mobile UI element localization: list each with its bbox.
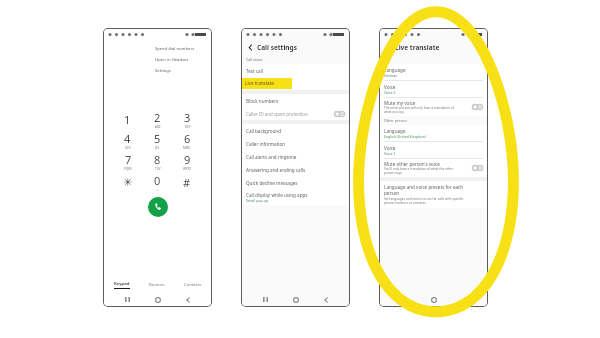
button[interactable]: Call alerts and ringtone <box>242 150 349 163</box>
staticText: Mute other person's voice <box>384 161 440 167</box>
button[interactable]: 4 <box>113 130 142 151</box>
button[interactable]: Voice <box>380 142 487 158</box>
staticText: Open in Headset <box>155 57 188 63</box>
staticText: Call display while using apps <box>246 192 308 198</box>
staticText: German <box>384 73 398 78</box>
button[interactable]: Caller information <box>242 137 349 150</box>
staticText: 1 <box>124 112 131 127</box>
button[interactable]: Call background <box>242 124 349 137</box>
staticText: Voice 2 <box>384 90 396 95</box>
button[interactable]: Recents <box>120 293 134 306</box>
staticText: Voice <box>384 145 396 151</box>
staticText: 9 <box>184 152 191 167</box>
staticText: Live translate <box>245 80 274 86</box>
button[interactable]: Recents <box>139 277 175 293</box>
staticText: Block numbers <box>246 98 279 104</box>
staticText: Voice 1 <box>384 151 396 156</box>
button[interactable]: Back <box>384 43 393 52</box>
staticText: 0 <box>154 173 161 188</box>
button[interactable]: Home <box>289 293 303 306</box>
button[interactable]: Open in Headset <box>150 54 211 65</box>
button[interactable]: Mute other person's voice <box>380 159 487 177</box>
staticText: Small pop-up <box>246 198 269 203</box>
button[interactable]: 0 <box>142 172 172 193</box>
staticText: Call settings <box>257 43 297 52</box>
button[interactable]: Call <box>148 197 168 217</box>
staticText: Set languages and voices to use for call… <box>384 197 464 201</box>
staticText: Quick decline messages <box>246 180 298 186</box>
staticText: 3 <box>184 110 191 125</box>
staticText: Caller information <box>246 141 286 147</box>
button[interactable]: 5 <box>142 130 172 151</box>
staticText: Call assist <box>246 57 263 62</box>
staticText: ✳ <box>123 176 133 189</box>
staticText: Other person <box>384 118 407 123</box>
staticText: Keypad <box>114 281 130 287</box>
button[interactable]: 1 <box>113 109 142 130</box>
staticText: 5 <box>154 131 161 146</box>
button[interactable]: Language and voice presets for each <box>380 181 487 208</box>
button[interactable]: Answering and ending calls <box>242 163 349 176</box>
staticText: Mute my voice <box>384 100 416 106</box>
button[interactable]: Back <box>457 293 471 306</box>
button[interactable]: 8 <box>142 151 172 172</box>
button[interactable]: 3 <box>172 109 202 130</box>
button[interactable]: Recents <box>396 293 410 306</box>
button[interactable]: 7 <box>113 151 142 172</box>
button[interactable]: Contacts <box>175 277 211 293</box>
staticText: Language and voice presets for each <box>384 184 464 190</box>
button[interactable]: 9 <box>172 151 202 172</box>
button[interactable]: Settings <box>150 65 211 76</box>
staticText: Recents <box>149 282 165 288</box>
button[interactable]: Language <box>380 125 487 141</box>
staticText: Answering and ending calls <box>246 167 306 173</box>
button[interactable]: Block numbers <box>242 94 349 107</box>
button[interactable]: Voice <box>380 81 487 97</box>
staticText: You'll only hear a translation of what t… <box>384 167 454 171</box>
staticText: Call background <box>246 128 282 134</box>
button[interactable]: Mute my voice <box>380 98 487 116</box>
staticText: The other person will only hear a transl… <box>384 106 455 110</box>
staticText: Me <box>384 57 390 62</box>
staticText: 6 <box>184 131 191 146</box>
staticText: WXYZ <box>183 167 191 171</box>
staticText: person <box>384 190 400 196</box>
button[interactable]: Language <box>380 64 487 80</box>
staticText: Call alerts and ringtone <box>246 154 297 160</box>
staticText: Speed dial numbers <box>155 46 195 52</box>
button[interactable]: Quick decline messages <box>242 176 349 189</box>
staticText: + <box>157 188 159 192</box>
staticText: # <box>183 175 191 190</box>
staticText: Voice <box>384 84 396 90</box>
staticText: 4 <box>124 131 131 146</box>
button[interactable]: Call display while using apps <box>242 189 349 205</box>
button[interactable]: Home <box>427 293 441 306</box>
button[interactable]: Back <box>319 293 333 306</box>
staticText: Settings <box>155 68 171 74</box>
staticText: Live translate <box>246 81 275 87</box>
button[interactable]: 2 <box>142 109 172 130</box>
button[interactable]: Speed dial numbers <box>150 43 211 54</box>
staticText: MNO <box>183 146 191 150</box>
button[interactable]: 6 <box>172 130 202 151</box>
button[interactable]: Home <box>151 293 165 306</box>
button[interactable]: Back <box>246 43 255 52</box>
staticText: what you say. <box>384 110 405 114</box>
staticText: Caller ID and spam protection <box>246 111 334 117</box>
button[interactable]: # <box>172 172 202 193</box>
button[interactable]: ✳ <box>113 172 142 193</box>
staticText: phone numbers or contacts. <box>384 201 427 205</box>
button[interactable]: Live translate <box>242 77 349 90</box>
staticText: GHI <box>125 146 131 150</box>
button[interactable]: Back <box>181 293 195 306</box>
button[interactable]: Keypad <box>104 277 139 293</box>
button[interactable]: Recents <box>258 293 272 306</box>
staticText: Contacts <box>184 282 202 288</box>
staticText: English (United Kingdom) <box>384 134 426 139</box>
staticText: 7 <box>125 152 132 167</box>
staticText: person says. <box>384 171 403 175</box>
button[interactable]: Test call <box>242 64 349 77</box>
button[interactable]: Caller ID and spam protection <box>242 107 349 120</box>
staticText: Test call <box>246 68 264 74</box>
staticText: Live translate <box>395 43 440 52</box>
